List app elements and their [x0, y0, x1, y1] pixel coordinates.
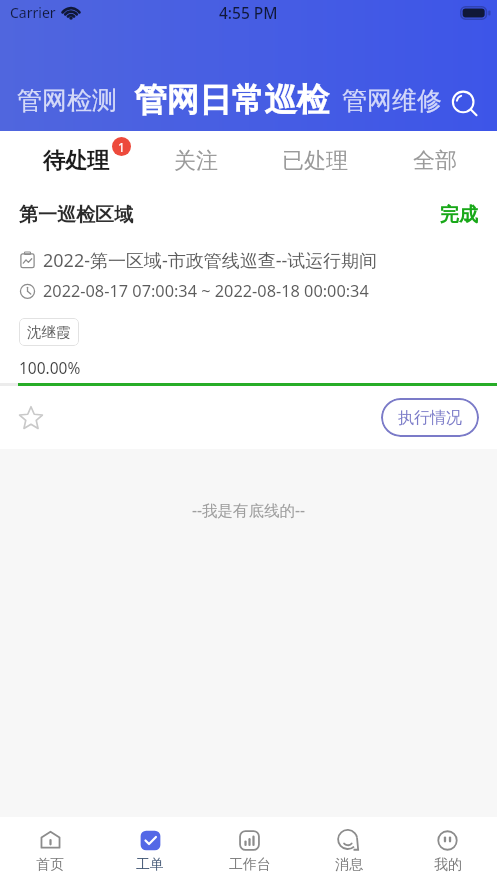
button[interactable]: 关注	[174, 131, 218, 190]
staticText: 100.00%	[19, 357, 81, 378]
staticText: 首页	[36, 856, 64, 874]
button[interactable]: 管网维修	[342, 85, 442, 116]
button[interactable]: 首页	[0, 817, 100, 883]
staticText: 沈继霞	[27, 323, 71, 341]
button[interactable]: 已处理	[282, 131, 348, 190]
staticText: 完成	[440, 203, 478, 227]
button[interactable]: 工单	[100, 817, 200, 883]
button[interactable]: 第一巡检区域	[0, 190, 497, 449]
staticText: --我是有底线的--	[0, 499, 497, 520]
staticText: 1	[118, 139, 125, 155]
button[interactable]: 全部	[413, 131, 457, 190]
button[interactable]: Search	[445, 84, 485, 124]
button[interactable]: 管网日常巡检	[134, 80, 329, 121]
button[interactable]: 待处理	[43, 131, 109, 190]
button[interactable]: 收藏	[14, 401, 48, 435]
staticText: 2022-08-17 07:00:34 ~ 2022-08-18 00:00:3…	[43, 280, 369, 302]
staticText: 4:55 PM	[219, 2, 278, 23]
staticText: Carrier	[10, 3, 56, 22]
button[interactable]: 执行情况	[381, 398, 479, 437]
button[interactable]: 工作台	[200, 817, 299, 883]
staticText: 关注	[174, 147, 218, 175]
button[interactable]: 消息	[299, 817, 398, 883]
staticText: 执行情况	[398, 408, 462, 428]
staticText: 消息	[335, 856, 363, 874]
staticText: 2022-第一区域-市政管线巡查--试运行期间	[43, 248, 378, 272]
staticText: 已处理	[282, 147, 348, 175]
staticText: 第一巡检区域	[19, 203, 133, 227]
staticText: 待处理	[43, 147, 109, 175]
button[interactable]: 管网检测	[17, 85, 117, 116]
button[interactable]: 我的	[398, 817, 497, 883]
staticText: 工单	[136, 856, 164, 874]
staticText: 我的	[434, 856, 462, 874]
staticText: 工作台	[229, 856, 271, 874]
staticText: 全部	[413, 147, 457, 175]
